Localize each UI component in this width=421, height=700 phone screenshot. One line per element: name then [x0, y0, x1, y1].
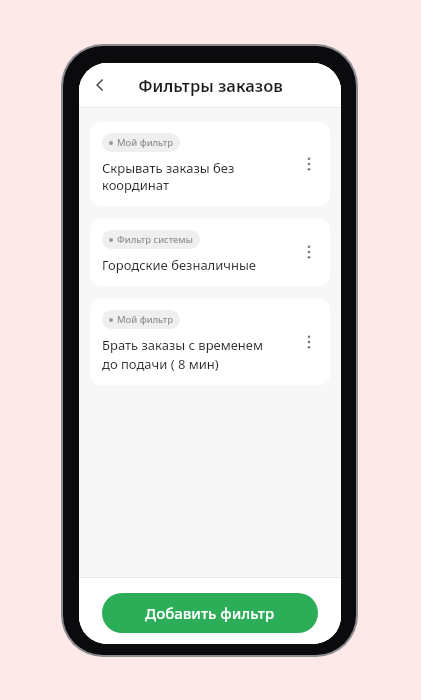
button[interactable]: More options	[294, 327, 324, 357]
button[interactable]: Back	[82, 67, 118, 103]
staticText: Брать заказы с временем	[102, 336, 263, 354]
staticText: Скрывать заказы без координат	[102, 159, 294, 194]
button[interactable]: More options	[294, 149, 324, 179]
button[interactable]: Фильтр системы	[90, 219, 330, 286]
staticText: до подачи ( 8 мин)	[102, 355, 219, 373]
staticText: Мой фильтр	[117, 313, 173, 326]
staticText: Фильтры заказов	[138, 74, 283, 96]
button[interactable]: Добавить фильтр	[102, 593, 318, 633]
button[interactable]: Мой фильтр	[90, 299, 330, 385]
button[interactable]: More options	[294, 237, 324, 267]
button[interactable]: Мой фильтр	[90, 122, 330, 206]
staticText: Городские безналичные	[102, 256, 256, 274]
staticText: Добавить фильтр	[145, 603, 275, 623]
staticText: Мой фильтр	[117, 136, 173, 149]
staticText: Фильтр системы	[117, 233, 193, 246]
